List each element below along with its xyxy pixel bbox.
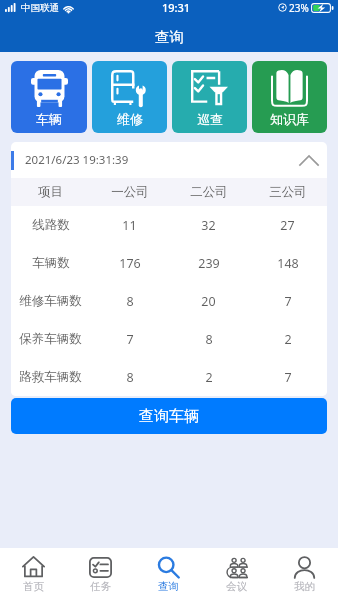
button[interactable]: 会议	[202, 556, 270, 593]
staticText: 8	[126, 293, 134, 310]
button[interactable]: 2021/6/23 19:31:39	[11, 142, 327, 178]
staticText: 查询	[158, 580, 179, 593]
button[interactable]: 知识库	[252, 61, 327, 133]
button[interactable]: 查询	[134, 556, 202, 593]
staticText: 线路数	[32, 217, 70, 233]
staticText: 7	[126, 331, 134, 348]
staticText: 车辆数	[32, 255, 70, 271]
staticText: 32	[201, 217, 216, 234]
staticText: 二公司	[190, 184, 228, 200]
staticText: 查询	[155, 28, 184, 46]
button[interactable]: 车辆	[11, 61, 87, 133]
button[interactable]: 巡查	[172, 61, 247, 133]
staticText: 会议	[226, 580, 247, 593]
staticText: 车辆	[36, 111, 62, 127]
staticText: 中国联通	[21, 2, 59, 14]
staticText: 23%	[289, 1, 309, 15]
staticText: 176	[119, 255, 141, 272]
staticText: 维修车辆数	[19, 293, 82, 309]
staticText: 路救车辆数	[19, 369, 82, 385]
staticText: 任务	[90, 580, 111, 593]
staticText: 27	[280, 217, 295, 234]
staticText: 11	[122, 217, 137, 234]
staticText: 20	[201, 293, 216, 310]
staticText: 首页	[23, 580, 44, 593]
staticText: 巡查	[197, 111, 223, 127]
button[interactable]: 首页	[0, 556, 67, 593]
staticText: 7	[284, 293, 292, 310]
staticText: 2	[284, 331, 292, 348]
staticText: 7	[284, 369, 292, 386]
staticText: 19:31	[162, 0, 191, 15]
button[interactable]: 维修	[92, 61, 167, 133]
staticText: 8	[205, 331, 213, 348]
button[interactable]: 我的	[270, 556, 338, 593]
staticText: 2021/6/23 19:31:39	[25, 152, 129, 168]
other: Collapse	[292, 143, 326, 177]
staticText: 维修	[117, 111, 143, 127]
staticText: 一公司	[111, 184, 149, 200]
staticText: 知识库	[270, 111, 309, 127]
staticText: 8	[126, 369, 134, 386]
button[interactable]: 查询车辆	[11, 398, 327, 434]
staticText: 三公司	[269, 184, 307, 200]
staticText: 239	[198, 255, 220, 272]
staticText: 保养车辆数	[19, 331, 82, 347]
staticText: 查询车辆	[139, 407, 199, 426]
staticText: 2	[205, 369, 213, 386]
button[interactable]: 任务	[67, 556, 134, 593]
staticText: 我的	[294, 580, 315, 593]
staticText: 项目	[38, 184, 63, 200]
staticText: 148	[277, 255, 299, 272]
